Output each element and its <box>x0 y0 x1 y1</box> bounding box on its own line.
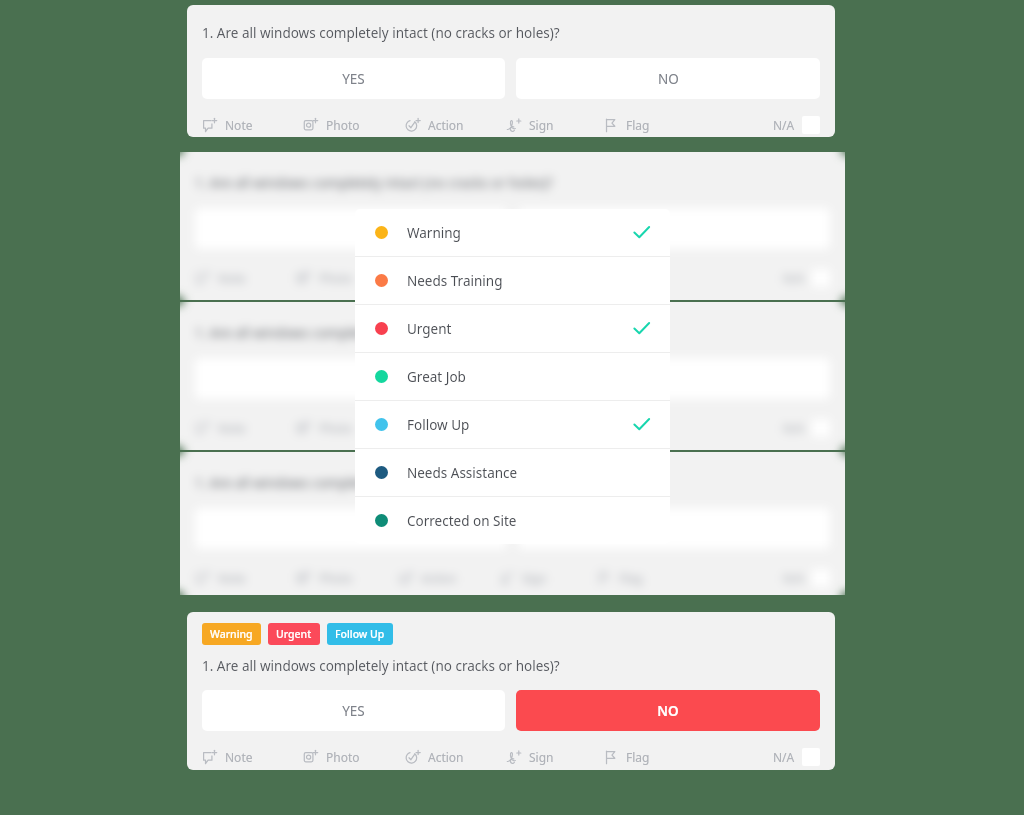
button[interactable]: Great Job <box>355 353 670 400</box>
staticText: NO <box>657 702 679 720</box>
button[interactable]: Warning <box>355 209 670 256</box>
staticText: Photo <box>319 420 353 436</box>
button[interactable]: Sign <box>506 117 554 133</box>
button[interactable]: Note <box>202 117 253 133</box>
button[interactable]: Sign <box>506 749 554 765</box>
button[interactable]: Photo <box>296 270 353 286</box>
button[interactable]: N/A <box>773 116 820 134</box>
staticText: 1. Are all windows completely intact (no… <box>195 174 553 192</box>
staticText: Corrected on Site <box>407 512 517 530</box>
button[interactable]: Sign <box>499 570 547 586</box>
button[interactable]: Note <box>202 749 253 765</box>
staticText: Follow Up <box>335 627 385 641</box>
staticText: Note <box>225 117 253 133</box>
staticText: N/A <box>773 117 795 133</box>
staticText: Sign <box>529 117 554 133</box>
button[interactable]: Action <box>398 420 457 436</box>
staticText: N/A <box>783 420 805 436</box>
staticText: Flag <box>619 570 643 586</box>
button[interactable]: Photo <box>303 749 360 765</box>
staticText: YES <box>342 70 365 88</box>
staticText: Note <box>225 749 253 765</box>
button[interactable]: Corrected on Site <box>355 497 670 544</box>
button[interactable]: Follow Up <box>327 623 393 645</box>
staticText: 1. Are all windows completely intact (no… <box>202 24 560 42</box>
button[interactable]: Sign <box>499 270 547 286</box>
button[interactable]: Photo <box>296 570 353 586</box>
button[interactable]: Photo <box>296 420 353 436</box>
button[interactable]: Flag <box>603 117 650 133</box>
staticText: Note <box>218 420 246 436</box>
staticText: Action <box>428 117 464 133</box>
staticText: Sign <box>529 749 554 765</box>
button[interactable]: Note <box>195 270 246 286</box>
staticText: Note <box>218 270 246 286</box>
staticText: Urgent <box>407 320 452 338</box>
button[interactable]: N/A <box>783 419 830 437</box>
staticText: Great Job <box>407 368 466 386</box>
button[interactable]: N/A <box>773 748 820 766</box>
staticText: Flag <box>619 420 643 436</box>
button[interactable]: Needs Training <box>355 257 670 304</box>
button[interactable]: Action <box>398 570 457 586</box>
button[interactable]: Urgent <box>355 305 670 352</box>
staticText: N/A <box>773 749 795 765</box>
staticText: Flag <box>626 117 650 133</box>
staticText: 1. Are all windows completely intact (no… <box>195 324 553 342</box>
staticText: Action <box>421 420 457 436</box>
button[interactable]: Follow Up <box>355 401 670 448</box>
staticText: Action <box>428 749 464 765</box>
staticText: Follow Up <box>407 416 470 434</box>
button[interactable]: Flag <box>596 420 643 436</box>
staticText: Note <box>218 570 246 586</box>
staticText: Sign <box>522 570 547 586</box>
staticText: NO <box>658 70 679 88</box>
staticText: Warning <box>210 627 253 641</box>
button[interactable]: YES <box>202 58 505 99</box>
button[interactable]: Urgent <box>268 623 320 645</box>
staticText: N/A <box>783 570 805 586</box>
staticText: 1. Are all windows completely intact (no… <box>195 474 553 492</box>
staticText: Flag <box>626 749 650 765</box>
staticText: N/A <box>783 270 805 286</box>
button[interactable]: NO <box>516 690 820 731</box>
button[interactable]: YES <box>202 690 505 731</box>
button[interactable]: Photo <box>303 117 360 133</box>
button[interactable]: Action <box>398 270 457 286</box>
staticText: Photo <box>326 749 360 765</box>
button[interactable]: Flag <box>603 749 650 765</box>
staticText: Warning <box>407 224 461 242</box>
button[interactable]: N/A <box>783 269 830 287</box>
button[interactable]: N/A <box>783 569 830 587</box>
button[interactable]: Note <box>195 570 246 586</box>
staticText: YES <box>342 702 365 720</box>
button[interactable]: Needs Assistance <box>355 449 670 496</box>
button[interactable]: Note <box>195 420 246 436</box>
staticText: Urgent <box>276 627 312 641</box>
button[interactable]: Warning <box>202 623 261 645</box>
staticText: Action <box>421 270 457 286</box>
button[interactable]: Action <box>405 749 464 765</box>
staticText: Needs Assistance <box>407 464 518 482</box>
staticText: Photo <box>319 270 353 286</box>
staticText: Action <box>421 570 457 586</box>
button[interactable]: Flag <box>596 570 643 586</box>
button[interactable]: Action <box>405 117 464 133</box>
staticText: Photo <box>326 117 360 133</box>
button[interactable]: NO <box>516 58 820 99</box>
staticText: Needs Training <box>407 272 503 290</box>
staticText: 1. Are all windows completely intact (no… <box>202 657 560 675</box>
staticText: Photo <box>319 570 353 586</box>
